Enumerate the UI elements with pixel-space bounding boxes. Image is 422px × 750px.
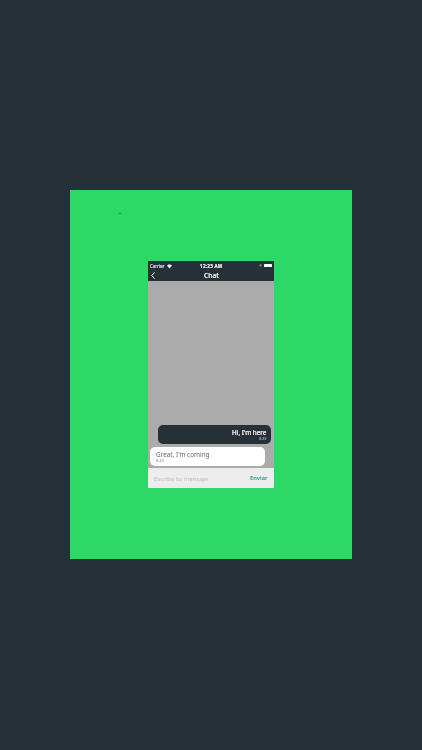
button[interactable]: Great, I'm coming [150, 447, 265, 466]
staticText: 0:23 [156, 458, 164, 463]
staticText: Great, I'm coming [156, 450, 210, 459]
staticText: Chat [204, 271, 219, 280]
staticText: 0:23 [259, 436, 267, 441]
staticText: 12:23 AM [200, 263, 223, 269]
staticText: Hi, I'm here [232, 428, 267, 437]
button[interactable]: Enviar [250, 474, 268, 482]
button[interactable]: Hi, I'm here [158, 425, 271, 444]
staticText: Carrier [150, 263, 165, 269]
button[interactable]: Back [148, 270, 159, 281]
staticText: Escribe tu mensaje [154, 474, 208, 482]
staticText: Enviar [250, 474, 268, 482]
